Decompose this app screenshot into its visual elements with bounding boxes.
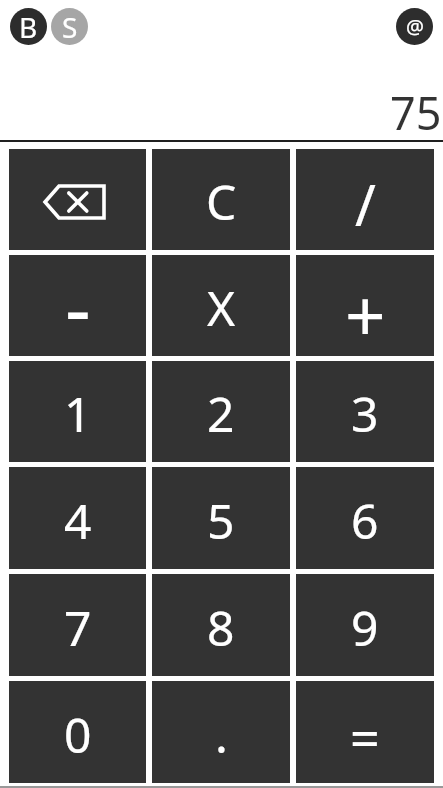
staticText: . bbox=[215, 702, 228, 767]
button[interactable]: 1 bbox=[9, 361, 146, 462]
staticText: 1 bbox=[64, 381, 92, 446]
staticText: 4 bbox=[64, 488, 92, 553]
staticText: 6 bbox=[351, 488, 379, 553]
button[interactable]: 0 bbox=[9, 681, 146, 783]
staticText: - bbox=[65, 251, 91, 352]
button[interactable]: X bbox=[152, 255, 290, 356]
staticText: @ bbox=[406, 13, 424, 40]
button[interactable]: B bbox=[10, 8, 47, 45]
staticText: 5 bbox=[207, 488, 235, 553]
button[interactable]: 2 bbox=[152, 361, 290, 462]
button[interactable]: 4 bbox=[9, 467, 146, 569]
button[interactable]: / bbox=[296, 149, 434, 250]
button[interactable] bbox=[9, 149, 146, 250]
button[interactable]: - bbox=[9, 255, 146, 356]
button[interactable]: C bbox=[152, 149, 290, 250]
staticText: 9 bbox=[351, 595, 379, 660]
staticText: 7 bbox=[64, 595, 92, 660]
button[interactable]: 9 bbox=[296, 574, 434, 676]
staticText: = bbox=[350, 702, 380, 773]
button[interactable]: @ bbox=[396, 8, 433, 45]
staticText: C bbox=[206, 169, 237, 234]
button[interactable]: 3 bbox=[296, 361, 434, 462]
staticText: / bbox=[355, 166, 376, 242]
staticText: 2 bbox=[207, 381, 235, 446]
staticText: S bbox=[62, 8, 78, 45]
staticText: X bbox=[207, 275, 236, 340]
button[interactable]: 6 bbox=[296, 467, 434, 569]
staticText: 0 bbox=[64, 702, 92, 767]
button[interactable]: 8 bbox=[152, 574, 290, 676]
staticText: 8 bbox=[207, 595, 235, 660]
button[interactable]: 5 bbox=[152, 467, 290, 569]
button[interactable]: 7 bbox=[9, 574, 146, 676]
staticText: + bbox=[345, 266, 386, 363]
staticText: 3 bbox=[351, 381, 379, 446]
button[interactable]: S bbox=[51, 8, 88, 45]
button[interactable]: + bbox=[296, 255, 434, 356]
staticText: B bbox=[19, 8, 38, 45]
button[interactable]: = bbox=[296, 681, 434, 783]
button[interactable]: . bbox=[152, 681, 290, 783]
staticText: 75 bbox=[390, 82, 442, 143]
